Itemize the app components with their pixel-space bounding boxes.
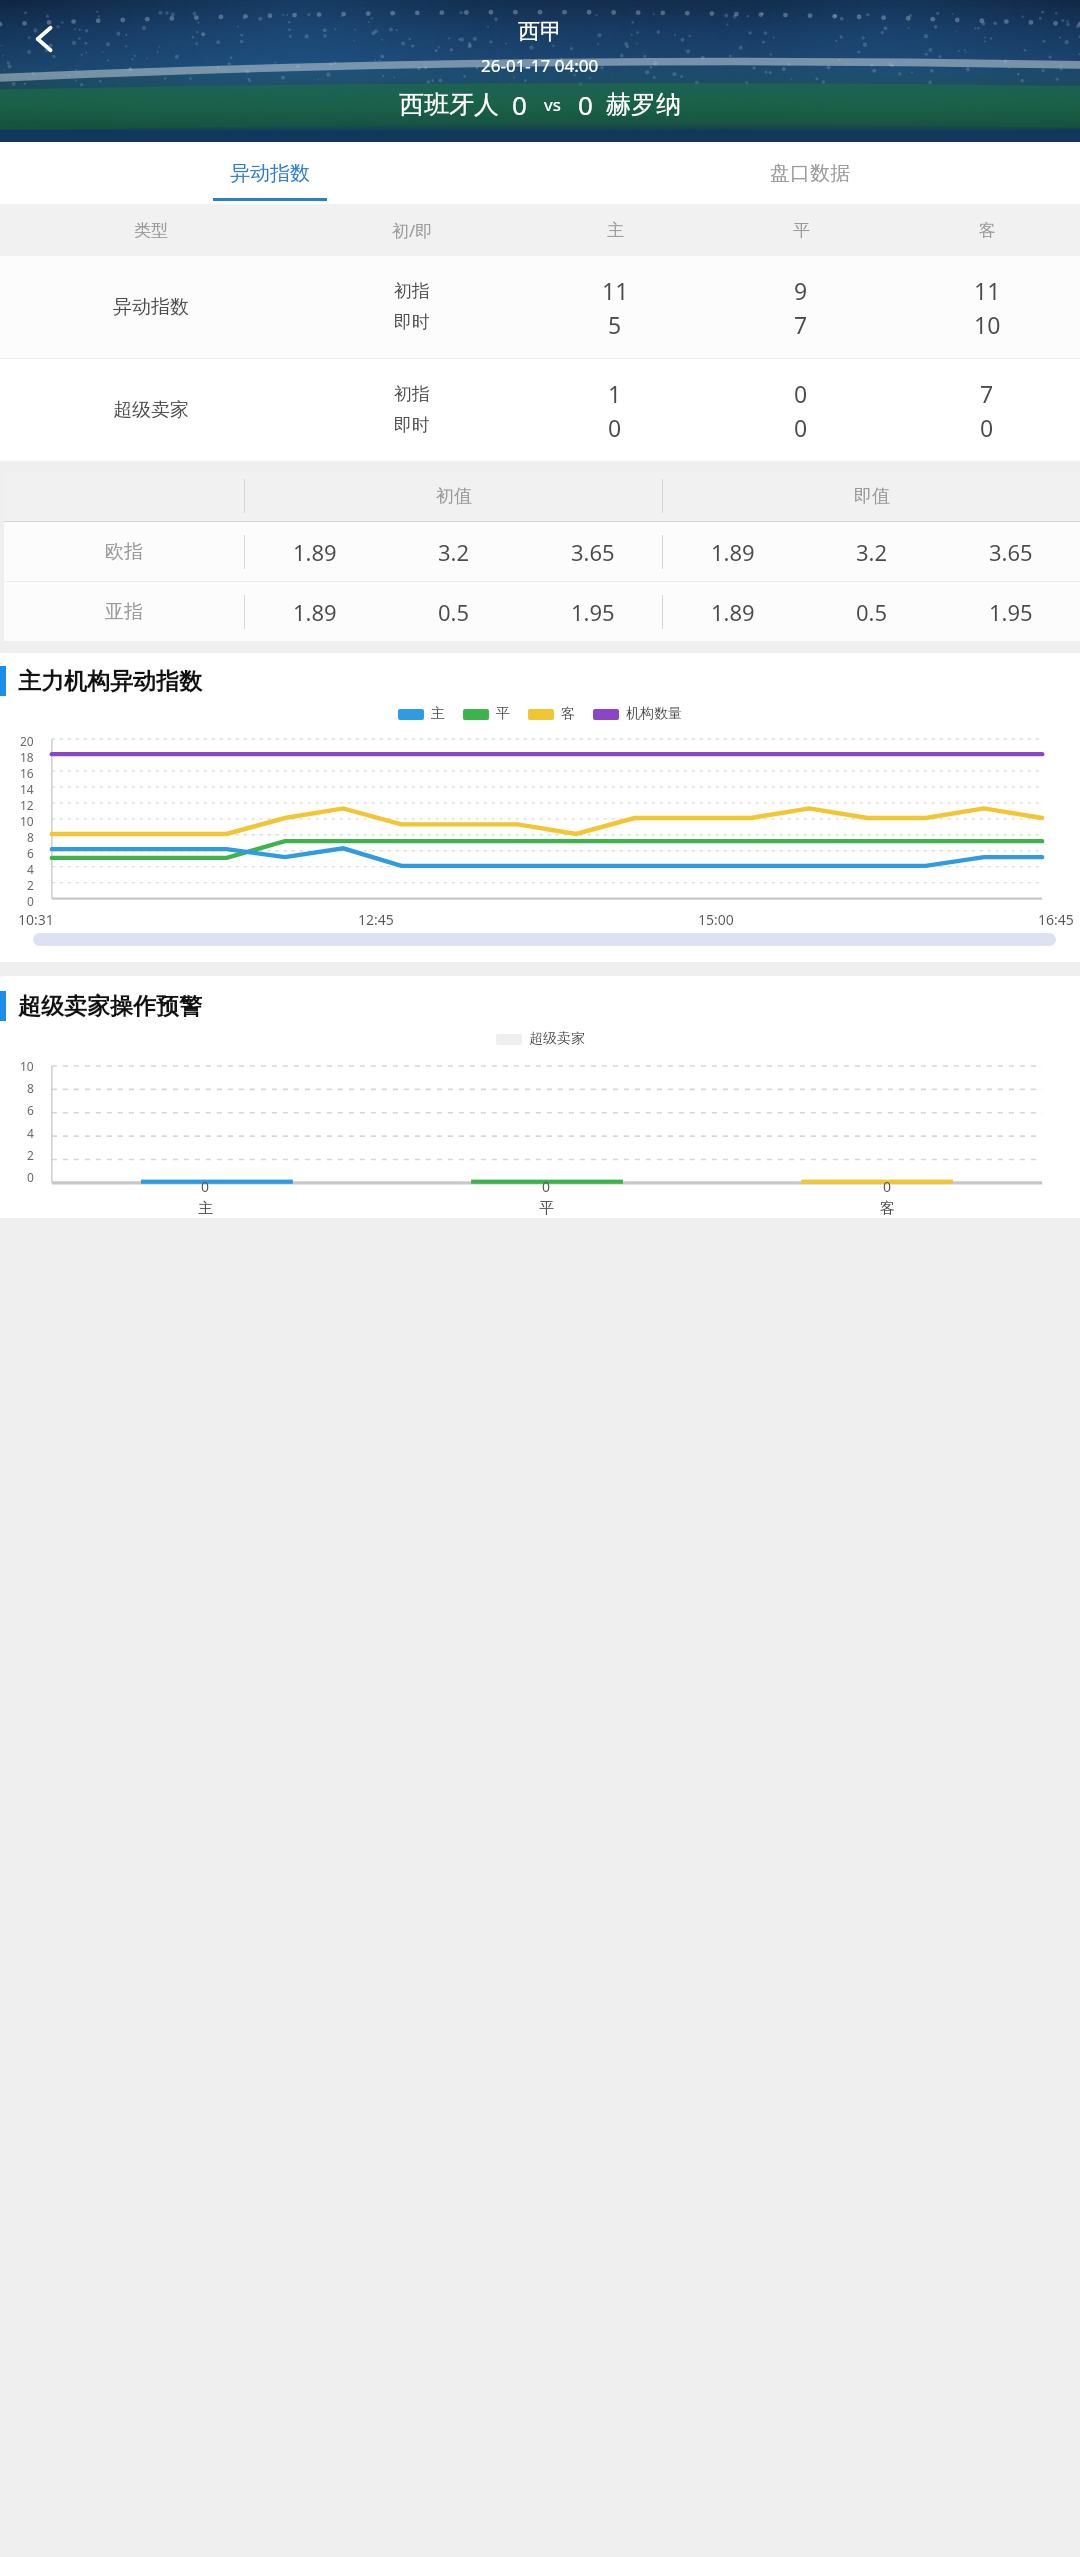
staticText: 客 [979,220,996,241]
staticText: 26-01-17 04:00 [481,54,599,77]
button[interactable]: 超级卖家 [0,359,1080,461]
staticText: 初/即 [392,219,433,242]
staticText: 初值 [436,485,472,508]
staticText: 6 [27,845,34,861]
staticText: 主 [431,705,445,723]
staticText: 9 [794,275,808,306]
staticText: 异动指数 [230,161,310,186]
staticText: 0 [794,378,808,409]
button[interactable]: Back [20,14,70,64]
staticText: 0 [608,412,622,443]
staticText: 12 [20,797,34,813]
staticText: 11 [602,275,629,306]
staticText: 10 [20,813,34,829]
staticText: 1.89 [711,597,755,627]
staticText: 即值 [854,485,890,508]
staticText: 15:00 [698,910,734,929]
staticText: 4 [27,1125,34,1141]
staticText: 初指 [394,383,430,406]
button[interactable]: 异动指数 [0,142,540,204]
staticText: 1.89 [293,537,337,567]
staticText: 超级卖家 [113,398,189,422]
staticText: 即时 [394,414,430,437]
staticText: 主 [198,1199,213,1218]
staticText: 平 [539,1199,554,1218]
staticText: 3.65 [571,537,615,567]
staticText: 0 [512,87,527,122]
staticText: 类型 [134,220,168,241]
staticText: 2 [27,877,34,893]
staticText: 10:31 [18,910,54,929]
staticText: vs [544,93,561,116]
button[interactable]: 异动指数 [0,256,1080,358]
staticText: 机构数量 [626,705,682,723]
staticText: 0 [27,1169,34,1185]
staticText: 1.89 [711,537,755,567]
staticText: 0 [980,412,994,443]
staticText: 10 [974,309,1001,340]
staticText: 西班牙人 [399,89,499,120]
staticText: 客 [561,705,575,723]
staticText: 3.2 [856,537,888,567]
staticText: 平 [793,220,810,241]
staticText: 超级卖家操作预警 [18,992,202,1021]
staticText: 1.95 [989,597,1033,627]
staticText: 7 [794,309,808,340]
staticText: 欧指 [105,540,143,564]
staticText: 0 [794,412,808,443]
staticText: 0.5 [438,597,470,627]
staticText: 平 [496,705,510,723]
staticText: 10 [20,1058,34,1074]
staticText: 主 [607,220,624,241]
staticText: 0 [578,87,593,122]
button[interactable]: 欧指 [4,522,1080,581]
staticText: 18 [20,749,34,765]
staticText: 11 [974,275,1001,306]
staticText: 异动指数 [113,295,189,319]
staticText: 3.65 [989,537,1033,567]
staticText: 14 [20,781,34,797]
staticText: 8 [27,829,34,845]
staticText: 1 [608,378,622,409]
staticText: 0.5 [856,597,888,627]
staticText: 客 [880,1199,895,1218]
staticText: 西甲 [518,18,562,46]
staticText: 0 [27,893,34,907]
staticText: 1.89 [293,597,337,627]
staticText: 0 [883,1177,892,1196]
staticText: 12:45 [358,910,394,929]
staticText: 1.95 [571,597,615,627]
button[interactable]: 盘口数据 [540,142,1080,204]
staticText: 初指 [394,280,430,303]
staticText: 0 [201,1177,210,1196]
staticText: 16 [20,765,34,781]
staticText: 超级卖家 [529,1030,585,1048]
staticText: 2 [27,1147,34,1163]
staticText: 6 [27,1102,34,1118]
staticText: 赫罗纳 [606,89,681,120]
staticText: 4 [27,861,34,877]
staticText: 8 [27,1080,34,1096]
staticText: 亚指 [105,600,143,624]
staticText: 盘口数据 [770,161,850,186]
staticText: 0 [542,1177,551,1196]
staticText: 3.2 [438,537,470,567]
staticText: 主力机构异动指数 [18,667,202,696]
staticText: 7 [980,378,994,409]
button[interactable]: 亚指 [4,582,1080,641]
staticText: 即时 [394,311,430,334]
staticText: 20 [20,733,34,749]
staticText: 5 [608,309,622,340]
staticText: 16:45 [1038,910,1074,929]
